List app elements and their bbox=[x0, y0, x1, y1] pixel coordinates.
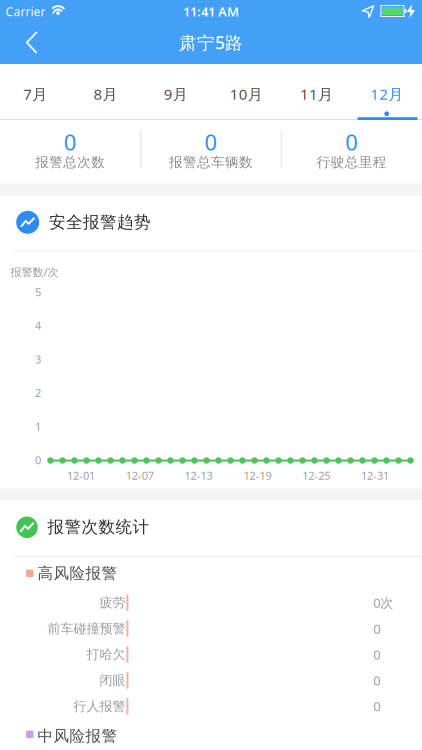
staticText: 12-19 bbox=[243, 468, 271, 483]
staticText: 报警总车辆数 bbox=[169, 154, 253, 171]
staticText: 12-07 bbox=[126, 468, 154, 483]
staticText: 疲劳 bbox=[99, 594, 125, 611]
staticText: 2 bbox=[35, 385, 41, 400]
staticText: 0 bbox=[373, 620, 380, 637]
button[interactable] bbox=[10, 22, 54, 62]
staticText: 行人报警 bbox=[73, 698, 125, 714]
staticText: 0 bbox=[64, 127, 77, 157]
button[interactable]: 11月 bbox=[281, 67, 352, 121]
staticText: 4 bbox=[35, 318, 41, 333]
staticText: 前车碰撞预警 bbox=[47, 620, 125, 637]
staticText: 0 bbox=[373, 646, 380, 663]
button[interactable]: 10月 bbox=[211, 67, 281, 121]
staticText: 12月 bbox=[370, 84, 403, 104]
staticText: 12-01 bbox=[67, 468, 95, 483]
staticText: 报警数/次 bbox=[10, 264, 58, 279]
staticText: 0次 bbox=[373, 594, 393, 611]
staticText: 行驶总里程 bbox=[317, 154, 387, 171]
staticText: 安全报警趋势 bbox=[49, 212, 151, 233]
staticText: 0 bbox=[373, 671, 380, 689]
staticText: 1 bbox=[35, 419, 41, 434]
button[interactable]: 12月 bbox=[352, 67, 422, 121]
staticText: 0 bbox=[373, 697, 380, 715]
staticText: 11月 bbox=[300, 84, 333, 104]
button[interactable]: 9月 bbox=[141, 67, 211, 121]
button[interactable]: 8月 bbox=[70, 67, 141, 121]
staticText: 12-31 bbox=[361, 468, 389, 483]
staticText: 12-13 bbox=[185, 468, 213, 483]
staticText: 8月 bbox=[93, 84, 117, 104]
staticText: 0 bbox=[345, 127, 358, 157]
staticText: 0 bbox=[35, 452, 41, 467]
staticText: 9月 bbox=[164, 84, 188, 104]
staticText: 12-25 bbox=[302, 468, 330, 483]
staticText: 肃宁5路 bbox=[179, 31, 243, 54]
staticText: 闭眼 bbox=[99, 672, 125, 689]
staticText: Carrier bbox=[5, 3, 45, 20]
staticText: 3 bbox=[35, 352, 41, 367]
staticText: 7月 bbox=[23, 84, 47, 104]
staticText: 10月 bbox=[230, 84, 263, 104]
staticText: 0 bbox=[204, 127, 217, 157]
staticText: 高风险报警 bbox=[37, 563, 117, 583]
staticText: 11:41 AM bbox=[183, 3, 239, 20]
staticText: 5 bbox=[35, 284, 41, 299]
button[interactable]: 7月 bbox=[0, 67, 70, 121]
staticText: 报警次数统计 bbox=[47, 517, 149, 537]
staticText: 打哈欠 bbox=[86, 646, 125, 663]
staticText: 报警总次数 bbox=[35, 154, 105, 171]
staticText: 中风险报警 bbox=[37, 726, 117, 746]
